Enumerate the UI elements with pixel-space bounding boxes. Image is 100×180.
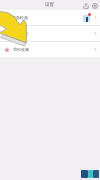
staticText: 版本更新检测 <box>4 15 28 20</box>
button[interactable]: Settings <box>90 1 99 10</box>
button[interactable]: 我的收藏 <box>0 42 100 57</box>
button[interactable]: 消息通知设置 <box>0 26 100 41</box>
staticText: 我的收藏 <box>13 47 29 52</box>
staticText: 设置 <box>45 2 54 8</box>
button[interactable]: Share <box>81 1 90 10</box>
staticText: 消息通知设置 <box>4 31 28 36</box>
button[interactable]: 版本更新检测 <box>0 10 100 25</box>
